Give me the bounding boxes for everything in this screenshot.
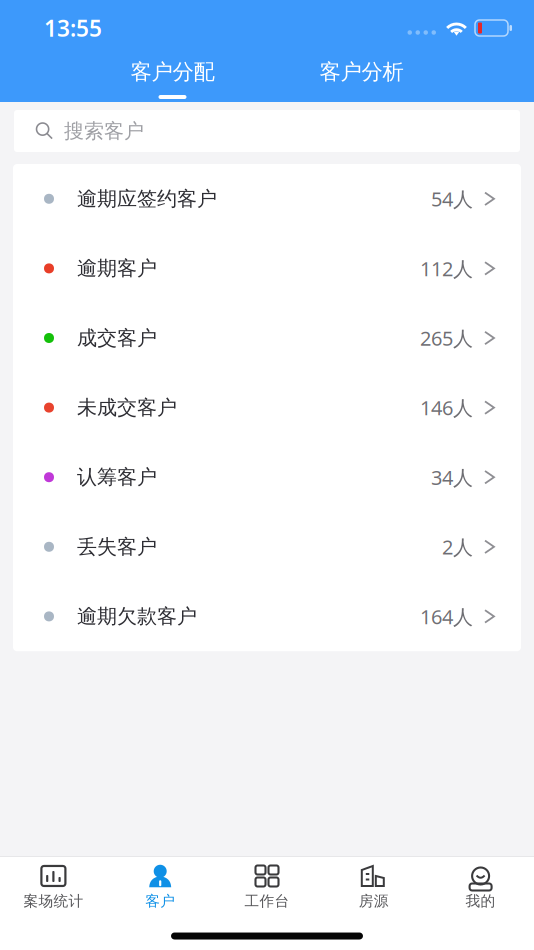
button[interactable]: 成交客户	[13, 303, 521, 373]
staticText: 工作台	[244, 892, 289, 910]
staticText: 逾期应签约客户	[77, 186, 217, 211]
button[interactable]: 我的	[427, 856, 534, 918]
staticText: 客户	[145, 892, 175, 910]
button[interactable]: 房源	[320, 856, 427, 918]
button[interactable]: 逾期欠款客户	[13, 582, 521, 651]
button[interactable]: 搜索客户	[14, 110, 520, 152]
staticText: 客户分配	[130, 59, 214, 85]
button[interactable]: 丢失客户	[13, 512, 521, 582]
staticText: 2人	[442, 533, 473, 560]
button[interactable]: 客户	[107, 856, 214, 918]
staticText: 逾期客户	[77, 256, 157, 281]
staticText: 案场统计	[23, 892, 83, 910]
staticText: 未成交客户	[77, 395, 177, 420]
button[interactable]: 认筹客户	[13, 442, 521, 512]
button[interactable]: 逾期客户	[13, 234, 521, 303]
staticText: 逾期欠款客户	[77, 604, 197, 629]
staticText: 搜索客户	[64, 119, 144, 143]
staticText: 我的	[466, 892, 496, 910]
staticText: 265人	[420, 325, 473, 351]
staticText: 146人	[420, 394, 473, 421]
button[interactable]: 案场统计	[0, 856, 107, 918]
staticText: 112人	[420, 255, 473, 282]
button[interactable]: 客户分析	[319, 60, 403, 102]
button[interactable]: 客户分配	[130, 60, 214, 102]
staticText: 54人	[431, 185, 473, 212]
button[interactable]: 逾期应签约客户	[13, 164, 521, 234]
staticText: 34人	[431, 464, 473, 490]
button[interactable]: 未成交客户	[13, 373, 521, 442]
button[interactable]: 工作台	[214, 856, 320, 918]
staticText: 成交客户	[77, 326, 157, 350]
staticText: 认筹客户	[77, 465, 157, 489]
staticText: 客户分析	[319, 59, 403, 85]
staticText: 164人	[420, 603, 473, 630]
staticText: 房源	[359, 892, 389, 910]
staticText: 13:55	[44, 13, 102, 43]
staticText: 丢失客户	[77, 534, 157, 559]
